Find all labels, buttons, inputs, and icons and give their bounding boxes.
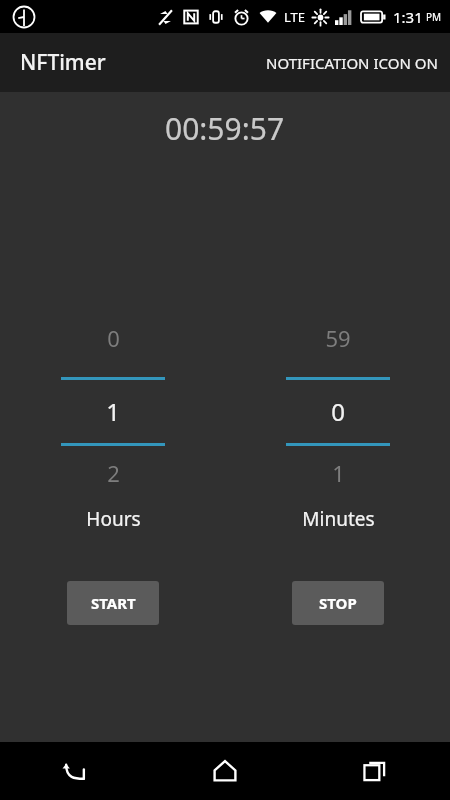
staticText: 2 bbox=[107, 458, 120, 484]
staticText: 1:31 bbox=[393, 7, 423, 27]
staticText: START bbox=[91, 593, 136, 613]
button[interactable]: Back bbox=[0, 742, 150, 800]
button[interactable]: Recent apps bbox=[300, 742, 450, 800]
staticText: 00:59:57 bbox=[165, 108, 285, 149]
staticText: STOP bbox=[319, 593, 357, 613]
staticText: 0 bbox=[107, 323, 120, 353]
button[interactable]: NOTIFICATION ICON ON bbox=[254, 39, 450, 87]
staticText: 1 bbox=[106, 395, 120, 428]
button[interactable]: 0 bbox=[61, 314, 165, 484]
staticText: Minutes bbox=[302, 506, 375, 532]
button[interactable]: STOP bbox=[292, 581, 384, 625]
button[interactable]: START bbox=[67, 581, 159, 625]
staticText: NOTIFICATION ICON ON bbox=[266, 53, 438, 73]
button[interactable]: Home bbox=[150, 742, 300, 800]
staticText: 59 bbox=[325, 323, 351, 353]
staticText: PM bbox=[426, 10, 442, 24]
staticText: NFTimer bbox=[20, 48, 106, 77]
staticText: 1 bbox=[332, 458, 345, 484]
staticText: 0 bbox=[331, 395, 345, 428]
button[interactable]: 59 bbox=[286, 314, 390, 484]
staticText: LTE bbox=[284, 8, 306, 26]
staticText: Hours bbox=[86, 506, 141, 532]
